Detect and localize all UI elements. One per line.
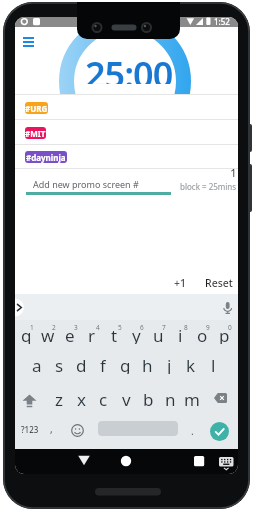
staticText: 4 xyxy=(96,323,100,331)
staticText: 1:52 xyxy=(214,17,230,27)
button[interactable]: d xyxy=(70,354,92,374)
button[interactable] xyxy=(190,452,208,470)
staticText: , xyxy=(50,422,53,436)
staticText: 9 xyxy=(206,323,210,331)
staticText: e xyxy=(65,324,75,344)
staticText: f xyxy=(100,354,106,374)
staticText: 7 xyxy=(162,323,166,331)
staticText: s xyxy=(55,354,64,374)
button[interactable]: Add new promo screen # xyxy=(26,172,172,195)
staticText: block = 25mins xyxy=(180,181,237,192)
staticText: p xyxy=(219,324,230,344)
button[interactable]: h xyxy=(136,354,158,374)
button[interactable]: k xyxy=(180,354,202,374)
button[interactable]: v xyxy=(115,388,137,408)
staticText: #URG xyxy=(25,103,48,114)
staticText: 5 xyxy=(118,323,122,331)
staticText: 8 xyxy=(184,323,188,331)
staticText: Reset xyxy=(205,276,233,290)
staticText: #MIT xyxy=(25,128,46,139)
staticText: a xyxy=(32,354,42,374)
staticText: 25:00 xyxy=(85,50,173,84)
button[interactable]: g xyxy=(114,354,136,374)
button[interactable]: p xyxy=(213,324,235,344)
staticText: q xyxy=(21,324,32,344)
button[interactable]: e xyxy=(59,324,81,344)
button[interactable]: s xyxy=(48,354,70,374)
staticText: j xyxy=(167,354,172,374)
staticText: x xyxy=(77,388,86,408)
staticText: c xyxy=(99,388,108,408)
button[interactable]: z xyxy=(48,388,70,408)
staticText: 1 xyxy=(30,323,34,331)
staticText: . xyxy=(191,424,194,438)
staticText: t xyxy=(111,324,118,344)
button[interactable]: x xyxy=(70,388,92,408)
button[interactable]: #MIT xyxy=(25,127,46,139)
button[interactable] xyxy=(117,452,135,470)
button[interactable]: n xyxy=(159,388,181,408)
staticText: 3 xyxy=(74,323,78,331)
staticText: n xyxy=(165,388,176,408)
staticText: h xyxy=(142,354,153,374)
staticText: d xyxy=(76,354,87,374)
staticText: y xyxy=(132,324,141,344)
button[interactable]: l xyxy=(202,354,224,374)
button[interactable]: i xyxy=(169,324,191,344)
button[interactable]: y xyxy=(125,324,147,344)
button[interactable]: m xyxy=(181,388,203,408)
staticText: o xyxy=(197,324,208,344)
button[interactable]: w xyxy=(37,324,59,344)
button[interactable]: #dayninja xyxy=(25,151,67,163)
staticText: 1 xyxy=(230,165,237,177)
button[interactable]: a xyxy=(26,354,48,374)
button[interactable]: +1 xyxy=(167,273,194,292)
button[interactable] xyxy=(18,32,40,50)
button[interactable]: t xyxy=(103,324,125,344)
staticText: ?123 xyxy=(21,424,39,435)
staticText: Add new promo screen # xyxy=(33,178,139,190)
button[interactable]: , xyxy=(44,421,58,437)
staticText: u xyxy=(153,324,164,344)
button[interactable] xyxy=(210,422,229,441)
staticText: i xyxy=(178,324,183,344)
staticText: 0 xyxy=(228,323,232,331)
staticText: g xyxy=(120,354,131,374)
staticText: v xyxy=(122,388,131,408)
button[interactable]: ?123 xyxy=(17,420,43,439)
staticText: w xyxy=(41,324,55,344)
staticText: k xyxy=(186,354,196,374)
staticText: r xyxy=(88,324,96,344)
staticText: z xyxy=(55,388,63,408)
button[interactable]: q xyxy=(15,324,37,344)
button[interactable]: c xyxy=(92,388,114,408)
staticText: +1 xyxy=(174,276,187,290)
button[interactable]: b xyxy=(137,388,159,408)
button[interactable]: Reset xyxy=(201,273,236,292)
button[interactable]: u xyxy=(147,324,169,344)
staticText: 2 xyxy=(52,323,56,331)
button[interactable] xyxy=(75,451,93,469)
button[interactable]: r xyxy=(81,324,103,344)
button[interactable]: j xyxy=(158,354,180,374)
staticText: m xyxy=(184,388,200,408)
button[interactable]: f xyxy=(92,354,114,374)
staticText: l xyxy=(211,354,216,374)
staticText: b xyxy=(143,388,154,408)
button[interactable]: . xyxy=(185,423,199,439)
button[interactable]: #URG xyxy=(25,102,48,114)
button[interactable]: o xyxy=(191,324,213,344)
staticText: 6 xyxy=(140,323,144,331)
staticText: #dayninja xyxy=(26,152,66,163)
